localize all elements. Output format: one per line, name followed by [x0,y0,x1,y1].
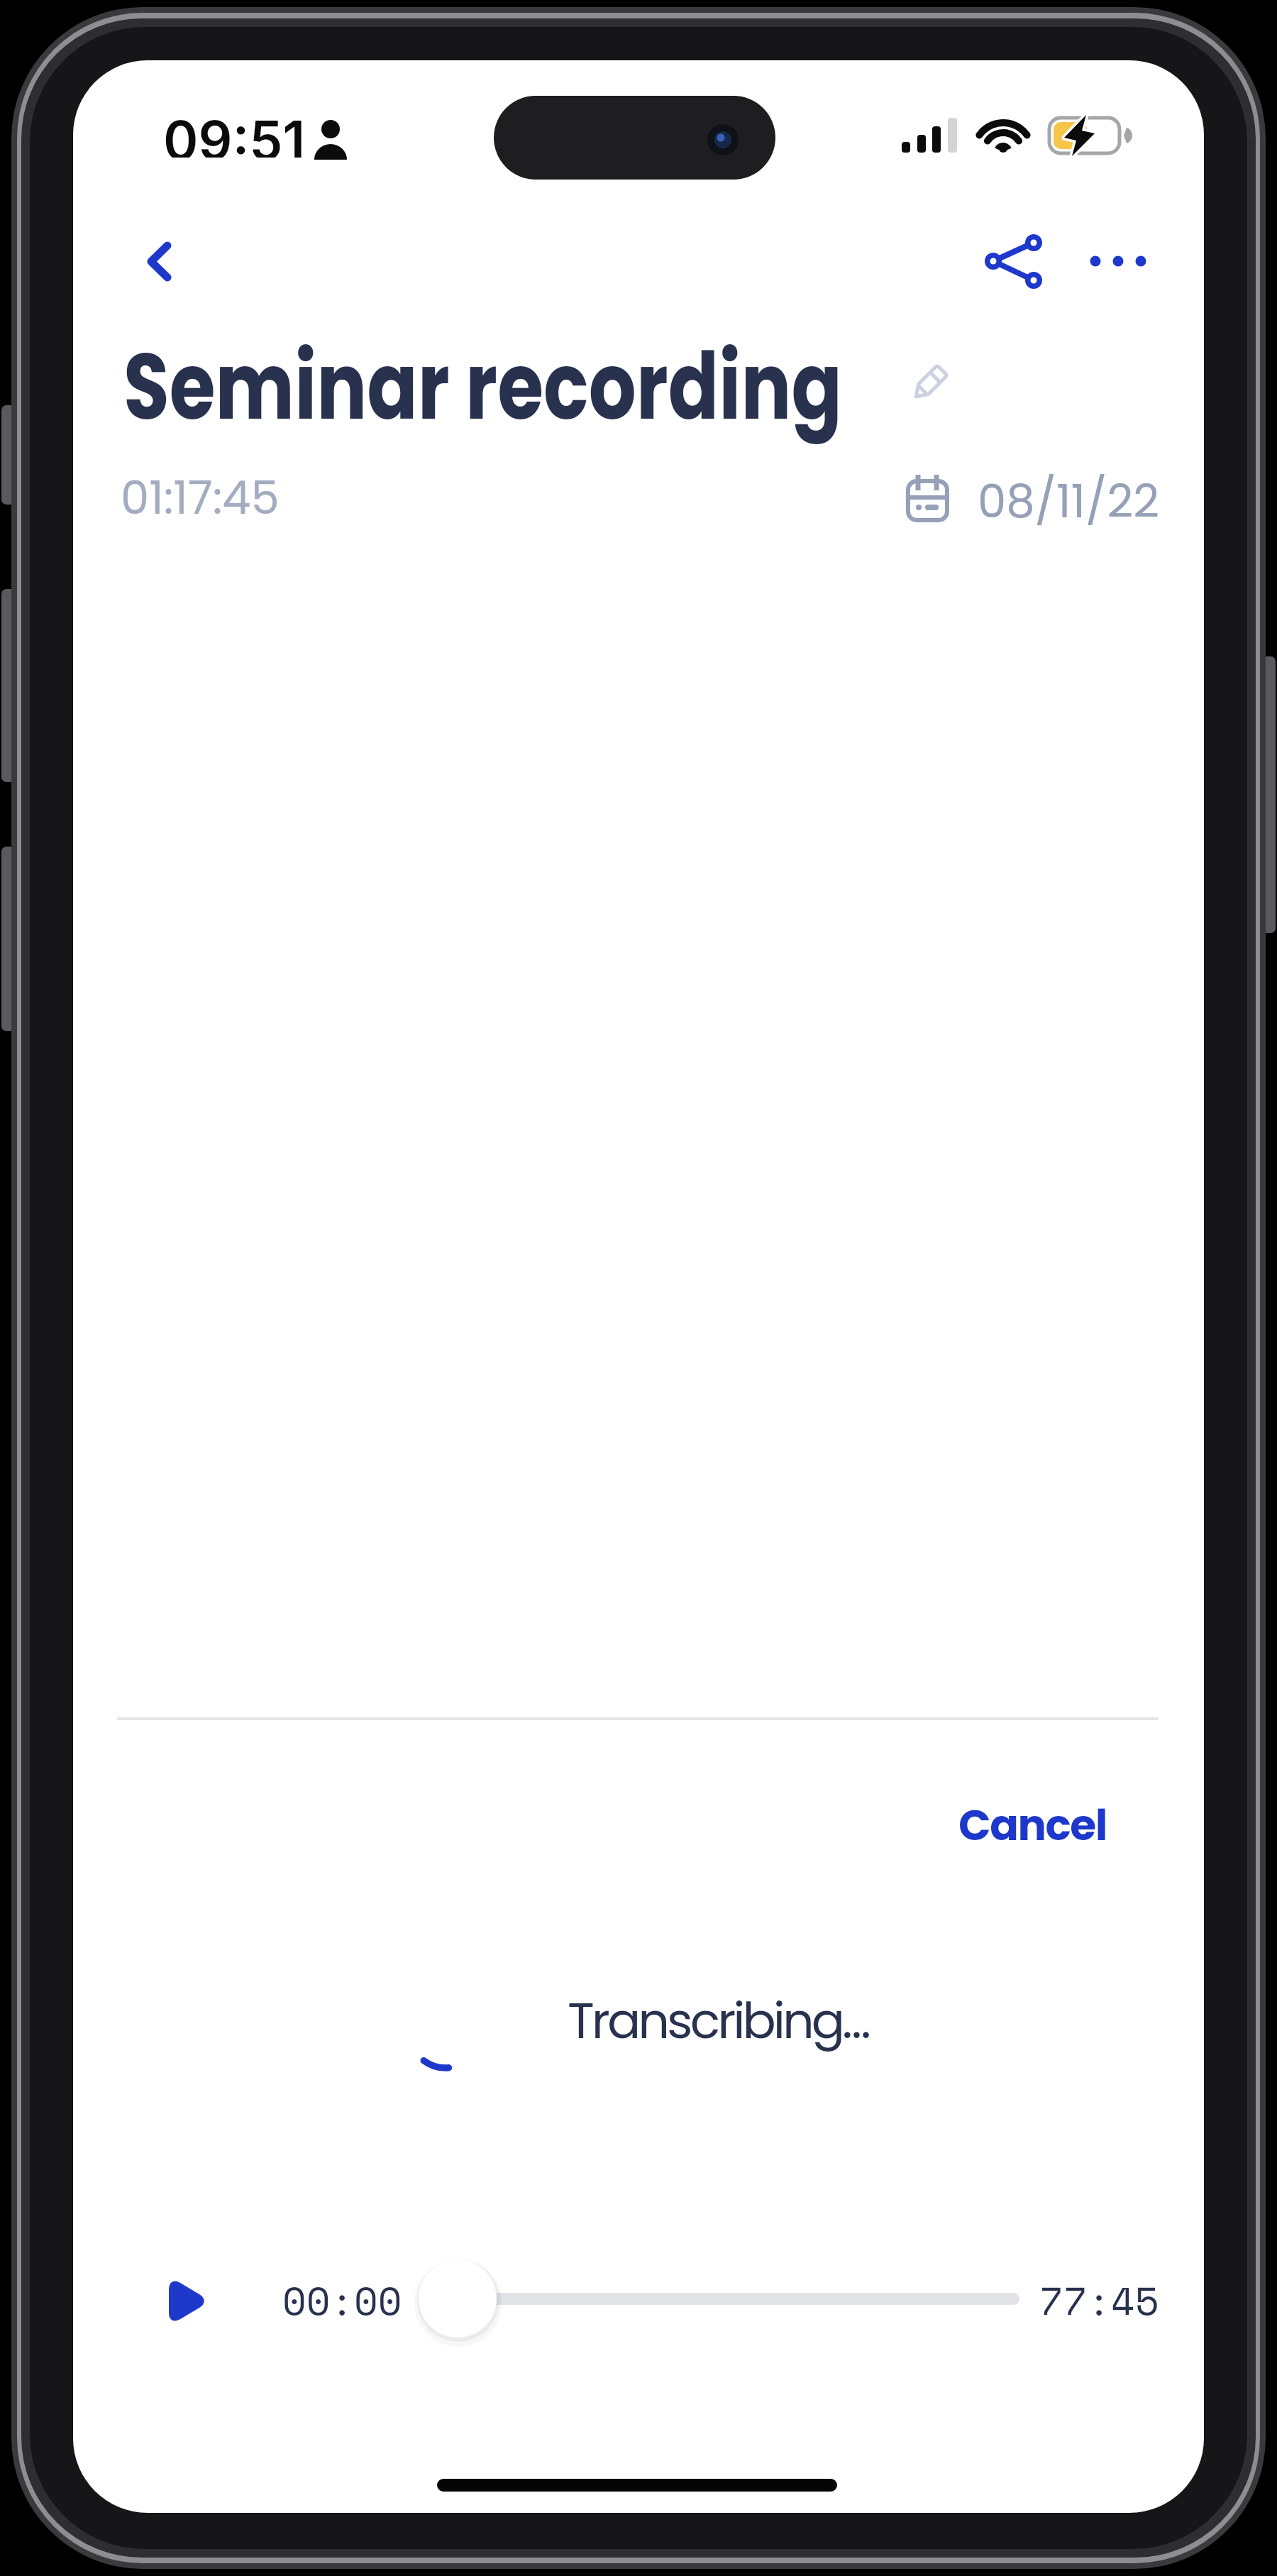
staticText: Cancel [958,1795,1107,1852]
button[interactable] [901,355,961,415]
staticText: 00:00 [282,2271,402,2328]
staticText: 01:17:45 [121,466,280,523]
staticText: 77:45 [1039,2271,1159,2328]
staticText: 09:51 [163,108,306,158]
staticText: 08/11/22 [978,470,1160,527]
button[interactable] [1082,234,1153,288]
button[interactable] [979,227,1050,295]
staticText: Seminar recording [123,321,842,451]
button[interactable] [419,2259,498,2339]
button[interactable] [160,2267,223,2335]
button[interactable]: Cancel [951,1795,1107,1852]
button[interactable] [135,234,192,291]
staticText: Transcribing… [568,1986,868,2055]
